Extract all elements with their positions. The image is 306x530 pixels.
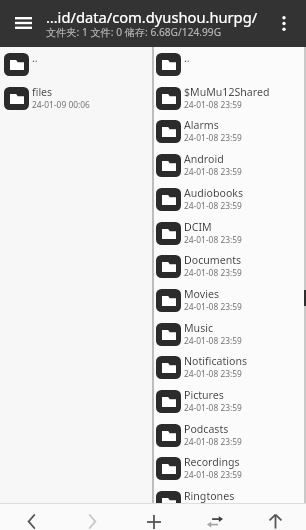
button[interactable]: Notifications — [152, 350, 306, 384]
button[interactable]: .. — [0, 47, 152, 81]
button[interactable]: Swap panes — [184, 508, 245, 530]
button[interactable]: $MuMu12Shared — [152, 81, 306, 115]
button[interactable]: Android — [152, 148, 306, 182]
staticText: 24-01-08 23:59 — [184, 132, 242, 143]
staticText: Alarms — [184, 118, 219, 132]
button[interactable]: Podcasts — [152, 418, 306, 452]
button[interactable]: Recordings — [152, 451, 306, 485]
staticText: Music — [184, 321, 214, 335]
button[interactable]: Documents — [152, 249, 306, 283]
staticText: Pictures — [184, 388, 224, 402]
staticText: Audiobooks — [184, 186, 244, 200]
staticText: .. — [184, 51, 190, 65]
staticText: 24-01-09 00:06 — [32, 99, 90, 110]
staticText: 24-01-08 23:59 — [184, 301, 242, 312]
button[interactable]: Alarms — [152, 114, 306, 148]
staticText: Podcasts — [184, 422, 229, 436]
staticText: 24-01-08 23:59 — [184, 166, 242, 177]
staticText: 24-01-08 23:59 — [184, 200, 242, 211]
staticText: $MuMu12Shared — [184, 85, 270, 99]
staticText: 24-01-08 23:59 — [184, 436, 242, 447]
button[interactable]: Back — [0, 508, 62, 530]
button[interactable]: DCIM — [152, 216, 306, 250]
staticText: 24-01-08 23:59 — [184, 469, 242, 480]
button[interactable]: Add — [123, 508, 184, 530]
staticText: …id/data/com.dyushou.hurpg/ — [46, 7, 258, 27]
staticText: 24-01-08 23:59 — [184, 402, 242, 413]
staticText: 24-01-08 23:59 — [184, 99, 242, 110]
staticText: Movies — [184, 287, 219, 301]
staticText: files — [32, 85, 53, 99]
button[interactable]: files — [0, 81, 152, 115]
button[interactable]: Menu — [0, 0, 46, 47]
button[interactable]: Audiobooks — [152, 182, 306, 216]
button[interactable]: Music — [152, 317, 306, 351]
staticText: DCIM — [184, 220, 212, 234]
staticText: 24-01-08 23:59 — [184, 267, 242, 278]
staticText: 24-01-08 23:59 — [184, 234, 242, 245]
staticText: 24-01-08 23:59 — [184, 368, 242, 379]
button[interactable]: Pictures — [152, 384, 306, 418]
button[interactable]: Movies — [152, 283, 306, 317]
staticText: Documents — [184, 253, 242, 267]
staticText: 24-01-08 23:59 — [184, 335, 242, 346]
button[interactable]: Forward — [62, 508, 123, 530]
button[interactable]: Up — [245, 508, 306, 530]
button[interactable]: Ringtones — [152, 485, 306, 503]
staticText: 文件夹: 1 文件: 0 储存: 6.68G/124.99G — [46, 25, 222, 39]
staticText: Ringtones — [184, 489, 235, 503]
staticText: Android — [184, 152, 224, 166]
button[interactable]: More options — [262, 0, 306, 47]
staticText: .. — [32, 51, 38, 65]
staticText: Notifications — [184, 354, 248, 368]
staticText: Recordings — [184, 455, 240, 469]
button[interactable]: .. — [152, 47, 306, 81]
